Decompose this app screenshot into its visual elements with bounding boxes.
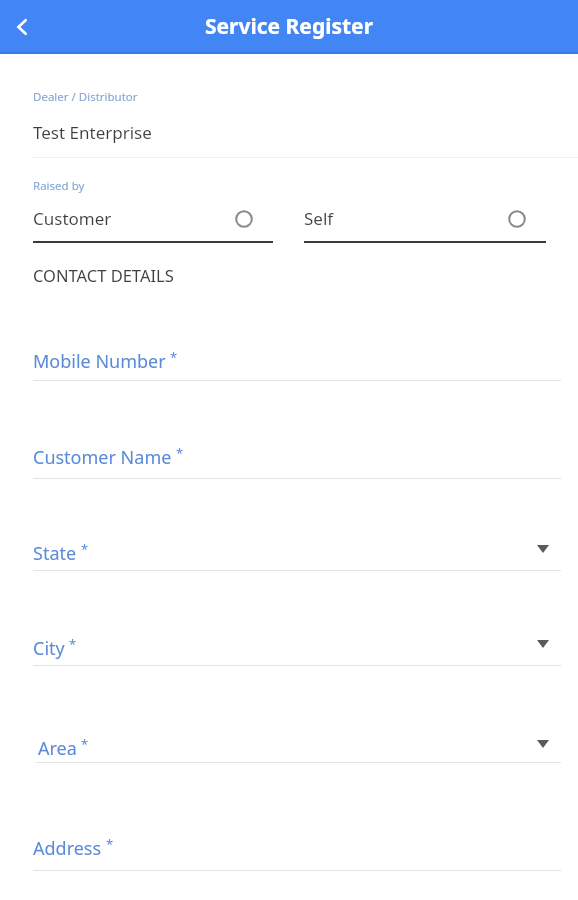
staticText: Mobile Number (33, 349, 166, 374)
staticText: * (176, 444, 184, 462)
staticText: Customer (33, 207, 112, 230)
button[interactable]: Address (0, 822, 578, 876)
staticText: Area (38, 736, 77, 761)
staticText: Test Enterprise (33, 121, 152, 144)
staticText: Address (33, 836, 102, 861)
staticText: Service Register (0, 12, 578, 41)
staticText: Customer Name (33, 445, 172, 470)
staticText: Raised by (33, 178, 85, 194)
staticText: * (69, 635, 77, 653)
button[interactable]: State (0, 527, 578, 576)
staticText: City (33, 636, 65, 661)
staticText: * (81, 735, 89, 753)
staticText: Dealer / Distributor (33, 89, 138, 105)
button[interactable]: Customer (33, 198, 273, 246)
staticText: * (106, 835, 114, 853)
staticText: Self (304, 207, 334, 230)
staticText: * (170, 348, 178, 366)
staticText: * (81, 540, 89, 558)
button[interactable]: Area (0, 722, 578, 768)
button[interactable]: City (0, 622, 578, 671)
staticText: CONTACT DETAILS (33, 264, 174, 286)
button[interactable]: Mobile Number (0, 335, 578, 386)
button[interactable]: Back (0, 0, 44, 54)
button[interactable]: Customer Name (0, 431, 578, 484)
staticText: State (33, 541, 77, 566)
button[interactable]: Self (304, 198, 546, 246)
